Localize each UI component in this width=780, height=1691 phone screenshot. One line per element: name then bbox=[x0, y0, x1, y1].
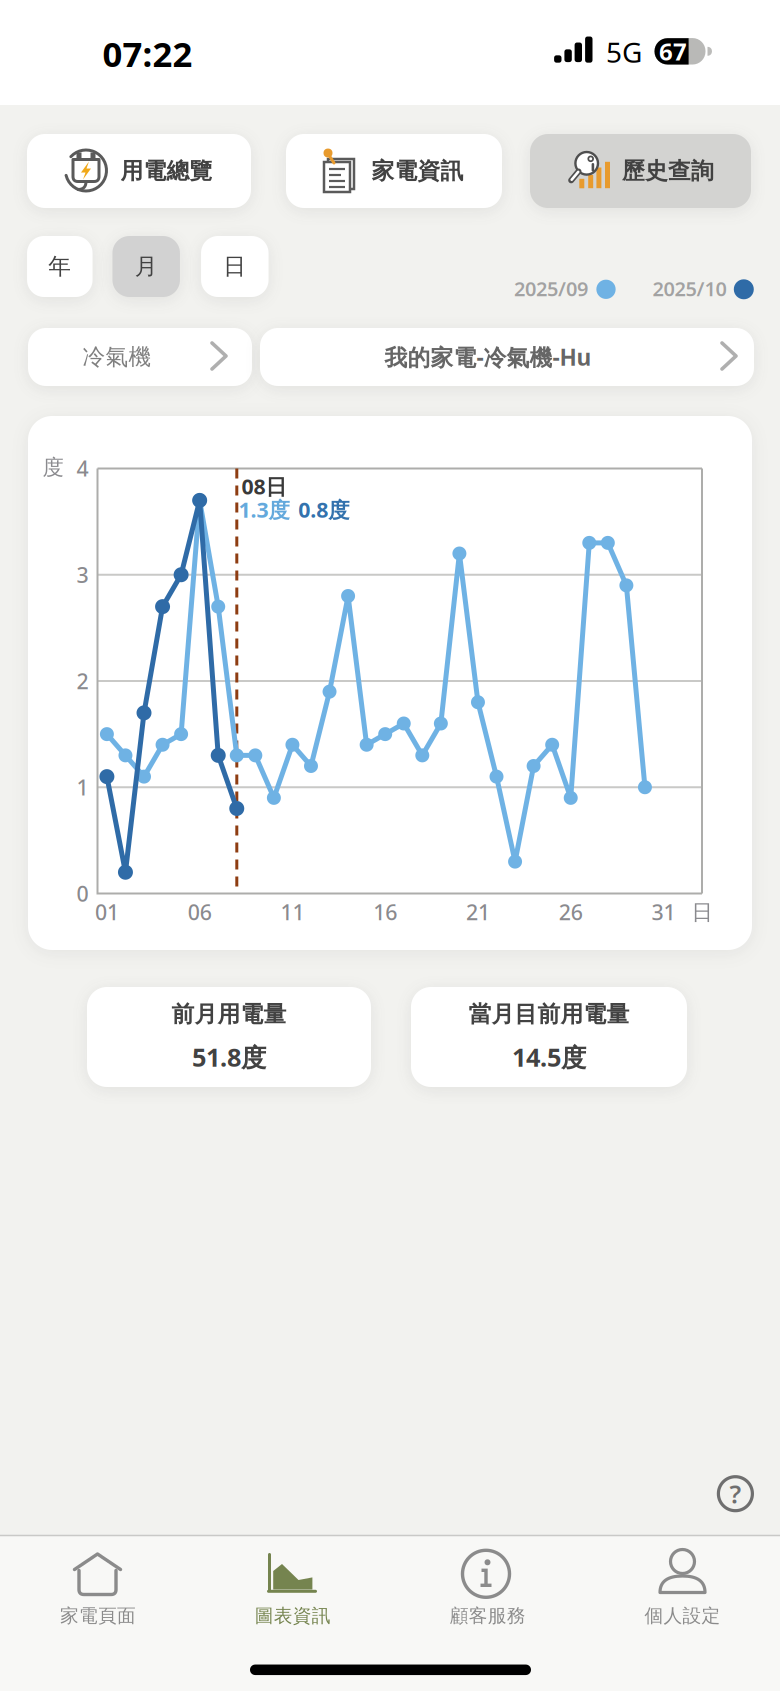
staticText: 01 bbox=[95, 898, 119, 926]
staticText: 31 bbox=[651, 898, 675, 926]
staticText: 日 bbox=[691, 899, 712, 926]
staticText: 26 bbox=[559, 898, 583, 926]
button[interactable]: 月 bbox=[112, 236, 180, 297]
staticText: 4 bbox=[76, 454, 88, 482]
staticText: 當月目前用電量 bbox=[468, 1000, 629, 1028]
staticText: 07:22 bbox=[102, 30, 192, 76]
staticText: 2 bbox=[76, 667, 88, 695]
staticText: 用電總覽 bbox=[120, 157, 212, 185]
button[interactable] bbox=[197, 1538, 387, 1638]
staticText: 冷氣機 bbox=[82, 343, 151, 371]
staticText: 21 bbox=[466, 898, 490, 926]
staticText: 08日 bbox=[241, 472, 286, 500]
button[interactable] bbox=[587, 1538, 777, 1638]
staticText: 家電資訊 bbox=[371, 157, 463, 185]
staticText: 14.5度 bbox=[512, 1040, 586, 1074]
button[interactable]: 冷氣機 bbox=[28, 328, 252, 386]
staticText: 歷史查詢 bbox=[622, 157, 714, 185]
staticText: 度 bbox=[42, 454, 63, 481]
staticText: 顧客服務 bbox=[450, 1604, 526, 1627]
staticText: 圖表資訊 bbox=[255, 1604, 331, 1627]
staticText: 1.3度 bbox=[239, 495, 290, 523]
staticText: 家電頁面 bbox=[60, 1604, 136, 1627]
staticText: 我的家電-冷氣機-Hu bbox=[384, 342, 591, 372]
staticText: 5G bbox=[606, 33, 642, 71]
button[interactable]: 歷史查詢 bbox=[530, 134, 751, 208]
staticText: ? bbox=[729, 1477, 741, 1510]
staticText: 3 bbox=[76, 560, 88, 589]
staticText: 日 bbox=[223, 253, 246, 280]
button[interactable] bbox=[2, 1538, 192, 1638]
staticText: 個人設定 bbox=[644, 1604, 720, 1627]
button[interactable]: ? bbox=[718, 1477, 752, 1511]
staticText: 67 bbox=[659, 35, 687, 67]
button[interactable]: 用電總覽 bbox=[27, 134, 251, 208]
button[interactable]: 年 bbox=[27, 236, 92, 297]
staticText: 06 bbox=[188, 898, 212, 926]
staticText: 1 bbox=[76, 773, 88, 801]
button[interactable]: 日 bbox=[201, 236, 269, 297]
staticText: 0.8度 bbox=[298, 495, 349, 523]
button[interactable]: 家電資訊 bbox=[286, 134, 502, 208]
staticText: 11 bbox=[280, 898, 304, 926]
staticText: 51.8度 bbox=[192, 1040, 266, 1074]
staticText: 2025/10 bbox=[652, 275, 726, 302]
staticText: 16 bbox=[373, 898, 397, 926]
button[interactable] bbox=[392, 1538, 582, 1638]
staticText: 0 bbox=[76, 879, 88, 908]
staticText: 前月用電量 bbox=[171, 1000, 286, 1028]
button[interactable]: 我的家電-冷氣機-Hu bbox=[260, 328, 754, 386]
staticText: 年 bbox=[48, 253, 71, 280]
staticText: 2025/09 bbox=[514, 275, 588, 302]
staticText: 月 bbox=[135, 253, 158, 280]
